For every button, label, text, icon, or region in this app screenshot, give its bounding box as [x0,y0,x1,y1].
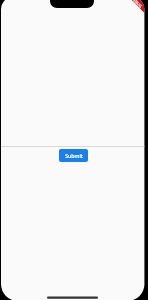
staticText: DEBUG [130,0,143,9]
staticText: Submit [65,152,83,159]
button[interactable]: Submit [59,149,88,162]
